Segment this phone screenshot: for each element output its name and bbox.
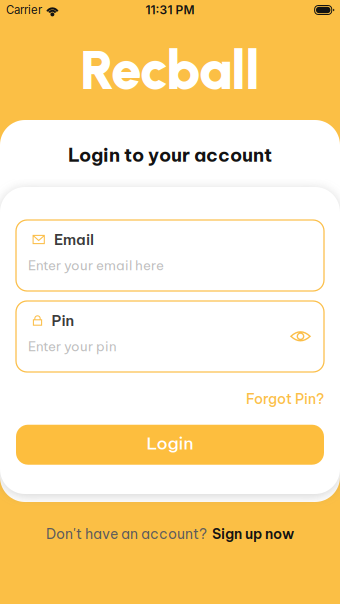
button[interactable]: Sign up now bbox=[207, 525, 294, 543]
staticText: 11:31 PM bbox=[145, 3, 194, 17]
staticText: Enter your pin bbox=[28, 338, 117, 355]
button[interactable]: Login bbox=[16, 425, 324, 465]
staticText: Sign up now bbox=[212, 525, 294, 543]
staticText: Recball bbox=[80, 37, 260, 103]
staticText: Enter your email here bbox=[28, 257, 164, 274]
button[interactable]: Forgot Pin? bbox=[246, 390, 324, 408]
staticText: Email bbox=[54, 230, 94, 249]
staticText: Pin bbox=[51, 311, 74, 330]
button[interactable]: Show pin bbox=[290, 301, 324, 343]
staticText: Forgot Pin? bbox=[246, 390, 324, 408]
staticText: Don't have an account? bbox=[46, 525, 207, 543]
staticText: Login bbox=[146, 432, 193, 454]
staticText: Login to your account bbox=[68, 143, 272, 167]
staticText: Carrier bbox=[6, 3, 42, 17]
